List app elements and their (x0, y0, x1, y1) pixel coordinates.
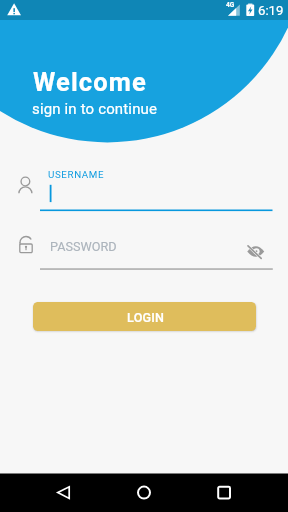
button[interactable]: USERNAME (40, 168, 273, 211)
button[interactable]: Back (48, 474, 80, 512)
button[interactable]: LOGIN (33, 302, 256, 331)
button[interactable]: Show password (244, 240, 267, 263)
staticText: sign in to continue (32, 100, 158, 118)
staticText: USERNAME (48, 169, 105, 180)
button[interactable]: PASSWORD (40, 232, 273, 270)
button[interactable]: Recent apps (208, 474, 240, 512)
staticText: LOGIN (127, 310, 165, 325)
staticText: PASSWORD (50, 239, 117, 254)
staticText: 4G (226, 1, 235, 9)
button[interactable]: Home (128, 474, 160, 512)
staticText: 6:19 (258, 3, 284, 18)
staticText: Welcome (33, 67, 147, 97)
